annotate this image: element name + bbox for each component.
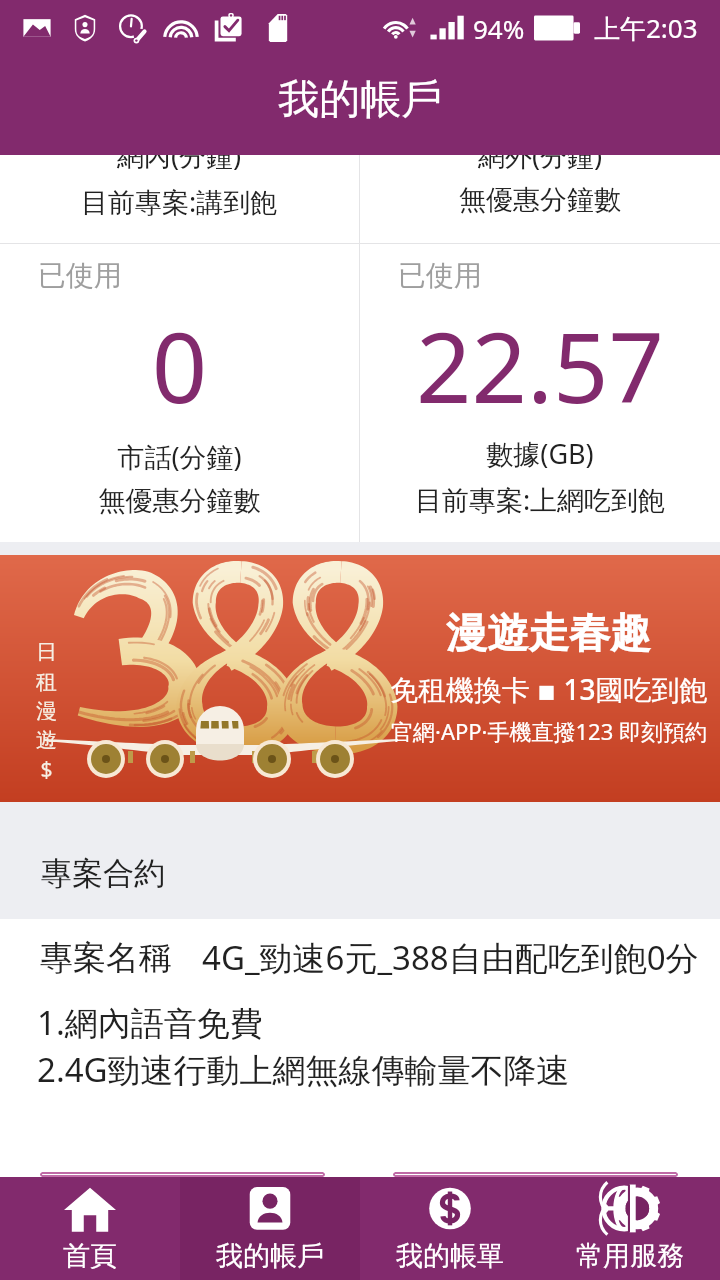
button[interactable]: 首頁: [0, 1177, 180, 1280]
staticText: 目前專案:講到飽: [81, 183, 278, 220]
staticText: 4G_勁速6元_388自由配吃到飽0分: [202, 935, 699, 980]
button[interactable]: 我的帳單: [360, 1177, 540, 1280]
button[interactable]: [393, 1172, 678, 1177]
staticText: 94%: [473, 11, 525, 46]
staticText: 網外(分鐘): [478, 137, 603, 174]
staticText: 官網·APP·手機直撥123 即刻預約: [391, 716, 707, 746]
button[interactable]: 網外(分鐘): [360, 155, 720, 542]
staticText: 我的帳單: [396, 1239, 504, 1273]
staticText: 專案合約: [41, 854, 165, 893]
staticText: 22.57: [360, 299, 720, 431]
staticText: 首頁: [63, 1239, 117, 1273]
staticText: 我的帳戶: [278, 74, 442, 126]
staticText: 上午2:03: [594, 10, 698, 46]
staticText: 無優惠分鐘數: [459, 183, 621, 217]
button[interactable]: 網內(分鐘): [0, 155, 359, 542]
button[interactable]: 我的帳戶: [180, 1177, 360, 1280]
staticText: 我的帳戶: [216, 1239, 324, 1273]
staticText: 已使用: [398, 258, 482, 293]
staticText: 漫遊走春趣: [446, 608, 651, 660]
button[interactable]: 漫遊走春趣 banner: [0, 555, 720, 802]
staticText: 目前專案:上網吃到飽: [360, 481, 720, 518]
staticText: 市話(分鐘): [0, 438, 359, 475]
button[interactable]: 常用服務: [540, 1177, 720, 1280]
staticText: 專案名稱: [40, 937, 172, 979]
staticText: 無優惠分鐘數: [0, 484, 359, 518]
staticText: 數據(GB): [360, 435, 720, 472]
staticText: 常用服務: [576, 1239, 684, 1273]
button[interactable]: [40, 1172, 325, 1177]
staticText: 網內(分鐘): [117, 137, 242, 174]
staticText: 免租機換卡 ▪ 13國吃到飽: [390, 670, 708, 708]
staticText: 已使用: [38, 258, 122, 293]
staticText: 2.4G勁速行動上網無線傳輸量不降速: [37, 1047, 570, 1092]
staticText: 日 租 漫 遊 $: [36, 639, 57, 783]
staticText: 0: [0, 299, 359, 431]
staticText: 1.網內語音免費: [37, 1000, 263, 1045]
